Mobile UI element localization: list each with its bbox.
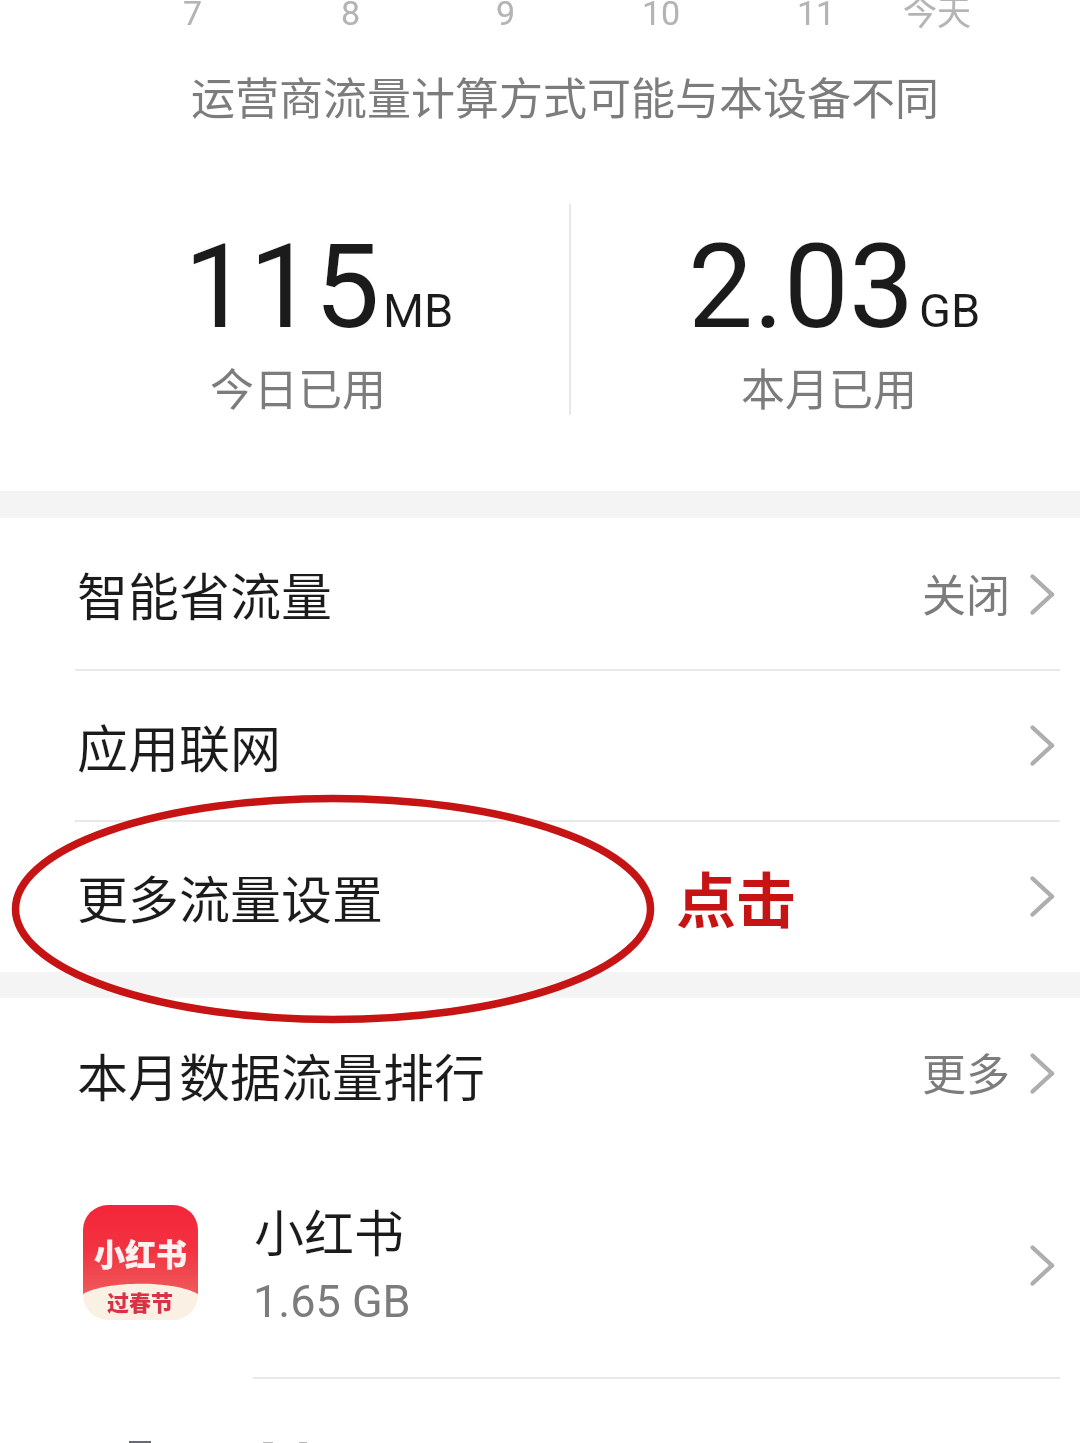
staticText: 本月已用: [741, 355, 917, 419]
other: Open: [1030, 725, 1054, 766]
staticText: 8: [341, 0, 361, 33]
button[interactable]: 小红书 app icon: [0, 1148, 1080, 1377]
staticText: 2.03: [688, 219, 915, 355]
staticText: 应用联网: [77, 709, 282, 783]
staticText: 更多: [922, 1040, 1010, 1104]
staticText: 115: [184, 219, 380, 355]
staticText: 点击: [676, 853, 796, 940]
staticText: 今天: [903, 0, 971, 35]
staticText: 11: [797, 0, 836, 33]
other: Open: [1030, 574, 1054, 615]
button[interactable]: 应用联网: [0, 670, 1080, 821]
button[interactable]: 本月数据流量排行: [0, 998, 1080, 1148]
other: 小红书 app icon: [83, 1205, 198, 1320]
staticText: 小红书: [94, 1230, 187, 1275]
staticText: GB: [919, 283, 981, 338]
staticText: 本月数据流量排行: [77, 1038, 486, 1112]
button[interactable]: 更多流量设置: [0, 821, 1080, 972]
staticText: 过春节: [107, 1285, 174, 1317]
staticText: 运营商流量计算方式可能与本设备不同: [191, 64, 939, 128]
button[interactable]: 智能省流量: [0, 518, 1080, 670]
staticText: 小红书: [254, 1194, 404, 1266]
staticText: 更多流量设置: [77, 860, 384, 934]
other: Highlight annotation: [0, 0, 1080, 1443]
staticText: 7: [183, 0, 203, 33]
other: Open: [1030, 876, 1054, 917]
staticText: 关闭: [922, 561, 1010, 625]
staticText: 1.65 GB: [253, 1275, 411, 1328]
staticText: 10: [642, 0, 681, 33]
other: Open: [1030, 1053, 1054, 1094]
other: Open: [1030, 1245, 1054, 1286]
staticText: 今日已用: [210, 355, 386, 419]
staticText: MB: [383, 283, 454, 338]
staticText: 智能省流量: [77, 557, 333, 631]
staticText: 9: [496, 0, 516, 33]
